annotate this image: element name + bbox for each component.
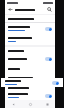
button[interactable]: [1, 78, 63, 87]
button[interactable]: [5, 64, 55, 73]
button[interactable]: Back: [7, 6, 14, 13]
button[interactable]: Recent apps: [41, 100, 53, 108]
button[interactable]: [45, 94, 52, 98]
button[interactable]: [45, 27, 52, 31]
button[interactable]: [52, 81, 59, 85]
button[interactable]: [45, 57, 52, 61]
button[interactable]: [5, 23, 55, 34]
button[interactable]: [5, 78, 55, 87]
button[interactable]: Search: [46, 6, 53, 13]
button[interactable]: [5, 34, 55, 45]
button[interactable]: [5, 73, 55, 82]
button[interactable]: [5, 54, 55, 64]
button[interactable]: Home: [24, 100, 36, 108]
button[interactable]: Back: [7, 100, 19, 108]
button[interactable]: [5, 91, 55, 100]
